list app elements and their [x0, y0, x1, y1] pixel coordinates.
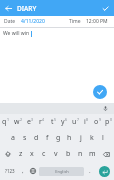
staticText: s [23, 133, 27, 143]
button[interactable]: English [39, 167, 84, 176]
staticText: n [78, 149, 83, 159]
staticText: t [51, 117, 54, 127]
staticText: b [66, 149, 71, 159]
staticText: 0 [110, 117, 113, 122]
staticText: 3 [31, 117, 34, 122]
button[interactable]: p [103, 114, 114, 130]
staticText: l [102, 133, 104, 143]
staticText: z [19, 149, 23, 159]
button[interactable]: x [26, 146, 38, 162]
staticText: f [46, 133, 49, 143]
button[interactable]: Confirm [93, 85, 107, 99]
staticText: 4 [42, 117, 45, 122]
staticText: d [34, 133, 39, 143]
button[interactable]: 12:00 PM [86, 18, 108, 25]
button[interactable]: j [75, 130, 86, 146]
staticText: Date [4, 18, 16, 25]
button[interactable]: c [38, 146, 50, 162]
button[interactable]: Change language [28, 162, 38, 180]
staticText: . [89, 167, 91, 175]
staticText: g [56, 133, 61, 143]
staticText: y [61, 117, 65, 127]
button[interactable]: 4/11/2020 [21, 18, 45, 25]
staticText: v [54, 149, 58, 159]
button[interactable]: b [62, 146, 74, 162]
staticText: x [30, 149, 34, 159]
button[interactable]: z [15, 146, 26, 162]
button[interactable]: . [85, 162, 95, 180]
button[interactable]: Enter [95, 162, 114, 180]
staticText: e [27, 117, 31, 127]
button[interactable]: t [48, 114, 59, 130]
staticText: j [80, 133, 82, 143]
button[interactable]: ?123 [0, 162, 18, 180]
button[interactable]: y [59, 114, 70, 130]
button[interactable]: Voice input [101, 104, 110, 113]
staticText: Time [69, 18, 81, 25]
button[interactable]: Backspace [98, 146, 114, 162]
staticText: k [90, 133, 94, 143]
staticText: u [72, 117, 77, 127]
staticText: 4/11/2020 [21, 18, 45, 25]
staticText: 9 [99, 117, 102, 122]
button[interactable]: w [12, 114, 24, 130]
button[interactable]: m [86, 146, 98, 162]
staticText: p [105, 117, 110, 127]
button[interactable]: l [97, 130, 108, 146]
button[interactable]: Back [3, 3, 14, 14]
staticText: DIARY [17, 4, 37, 13]
staticText: w [14, 117, 20, 127]
staticText: 6 [65, 117, 68, 122]
button[interactable]: Shift [0, 146, 15, 162]
staticText: We will win [3, 30, 30, 37]
staticText: ?123 [5, 168, 15, 174]
button[interactable]: g [53, 130, 64, 146]
button[interactable]: r [36, 114, 48, 130]
button[interactable]: We will win [3, 30, 32, 37]
staticText: 7 [77, 117, 80, 122]
staticText: h [67, 133, 72, 143]
button[interactable]: h [64, 130, 75, 146]
button[interactable]: a [7, 130, 19, 146]
button[interactable]: , [18, 162, 28, 180]
staticText: m [89, 149, 96, 159]
staticText: , [22, 167, 24, 175]
button[interactable]: q [0, 114, 12, 130]
staticText: English [55, 169, 69, 174]
button[interactable]: s [19, 130, 31, 146]
staticText: c [42, 149, 46, 159]
button[interactable]: d [31, 130, 42, 146]
staticText: i [84, 117, 86, 127]
staticText: 8 [86, 117, 89, 122]
button[interactable]: u [70, 114, 81, 130]
staticText: r [39, 117, 42, 127]
staticText: o [94, 117, 99, 127]
staticText: 12:00 PM [86, 18, 108, 25]
button[interactable]: Save [100, 3, 111, 14]
button[interactable]: f [42, 130, 53, 146]
staticText: a [11, 133, 15, 143]
staticText: q [2, 117, 7, 127]
staticText: 5 [54, 117, 57, 122]
button[interactable]: e [24, 114, 36, 130]
button[interactable]: n [74, 146, 86, 162]
staticText: 2 [20, 117, 23, 122]
button[interactable]: k [86, 130, 97, 146]
staticText: 1 [7, 117, 10, 122]
button[interactable]: i [81, 114, 92, 130]
button[interactable]: v [50, 146, 62, 162]
button[interactable]: o [92, 114, 103, 130]
